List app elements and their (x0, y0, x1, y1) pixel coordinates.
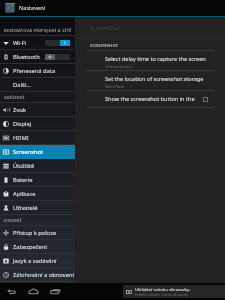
staticText: Ukládání snímku obrazovky.. (135, 287, 192, 293)
staticText: BEZDRÁTOVÁ PŘIPOJENÍ A SÍTĚ (4, 28, 72, 33)
button[interactable]: Zvuk (0, 103, 75, 116)
button[interactable]: Zabezpečení (0, 240, 75, 253)
staticText: Zabezpečení (13, 243, 47, 251)
button[interactable]: Back (6, 286, 17, 297)
staticText: Zvuk (13, 106, 26, 114)
staticText: Přenesená data (13, 67, 56, 75)
staticText: Baterie (13, 176, 33, 184)
staticText: Show the screenshot button in the (105, 95, 195, 103)
button[interactable]: Settings (4, 2, 16, 14)
button[interactable]: Zálohování a obnovení (0, 268, 75, 281)
button[interactable]: Další... (0, 78, 75, 91)
button[interactable]: Ukládání snímku obrazovky.. (123, 285, 225, 298)
staticText: Zálohování a obnovení (13, 271, 74, 279)
staticText: SCREENSHOT (90, 43, 119, 48)
staticText: HDMI (13, 134, 29, 142)
staticText: Jazyk a zadávání (13, 257, 57, 265)
button[interactable]: Screenshot (0, 145, 75, 158)
button[interactable]: Aplikace (0, 187, 75, 200)
staticText: Screenshot (13, 148, 44, 156)
button[interactable]: Displej (0, 117, 75, 130)
button[interactable]: Show the screenshot button in the (75, 91, 225, 107)
button[interactable]: Recent apps (50, 286, 61, 297)
button[interactable]: HDMI (0, 131, 75, 144)
button[interactable]: Jazyk a zadávání (0, 254, 75, 267)
button[interactable]: Home (28, 286, 39, 297)
staticText: Nastavení (19, 4, 46, 12)
staticText: Probíhá ukládání snímku obrazovky. (135, 293, 189, 297)
staticText: Set the location of screenshot storage (105, 75, 204, 83)
button[interactable]: Bluetooth (0, 50, 75, 63)
button[interactable]: Baterie (0, 173, 75, 186)
button[interactable]: Wi-Fi (0, 36, 75, 49)
staticText: ZAŘÍZENÍ (4, 95, 25, 100)
button[interactable]: Přístup k poloze (0, 226, 75, 239)
staticText: Aplikace (13, 190, 36, 198)
button[interactable]: Select delay time to capture the screen (75, 51, 225, 70)
staticText: Úložiště (13, 162, 35, 170)
staticText: Uživatelé (13, 204, 38, 212)
button[interactable]: Set the location of screenshot storage (75, 71, 225, 90)
button[interactable]: Uživatelé (0, 201, 75, 214)
staticText: Wi-Fi (13, 39, 27, 47)
button[interactable]: Úložiště (0, 159, 75, 172)
button[interactable]: Přenesená data (0, 64, 75, 77)
staticText: Další... (13, 81, 31, 89)
staticText: Přístup k poloze (13, 229, 57, 237)
staticText: Screenshot (90, 24, 120, 32)
staticText: Bluetooth (13, 53, 40, 61)
staticText: OSOBNÍ (4, 218, 22, 223)
staticText: Nand Flash (105, 84, 125, 89)
staticText: 15seconds later (105, 64, 133, 69)
staticText: Displej (13, 120, 32, 128)
staticText: Select delay time to capture the screen (105, 55, 206, 63)
